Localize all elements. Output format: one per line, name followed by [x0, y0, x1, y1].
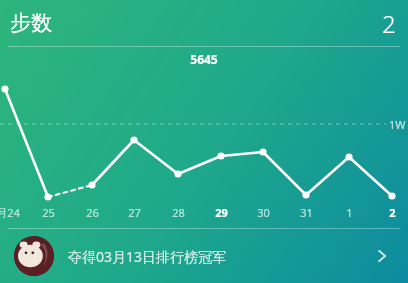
staticText: 25 — [42, 205, 55, 220]
staticText: 步数 — [10, 10, 52, 36]
staticText: 26 — [86, 205, 99, 220]
staticText: 31 — [300, 205, 313, 220]
staticText: 2 — [389, 205, 396, 220]
staticText: 夺得03月13日排行榜冠军 — [68, 247, 227, 266]
staticText: 3月24 — [0, 205, 20, 220]
staticText: 29 — [215, 205, 228, 220]
staticText: 28 — [172, 205, 185, 220]
staticText: 5645 — [190, 51, 218, 67]
button[interactable]: 夺得03月13日排行榜冠军 — [0, 229, 408, 283]
staticText: 27 — [128, 205, 141, 220]
other: 查看详情 — [372, 246, 392, 266]
staticText: 1 — [346, 205, 353, 220]
staticText: 30 — [257, 205, 270, 220]
staticText: 1W — [389, 117, 406, 132]
staticText: 2 — [382, 7, 396, 40]
